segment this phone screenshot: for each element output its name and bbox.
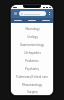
button[interactable] [19, 11, 46, 16]
button[interactable] [39, 18, 53, 23]
button[interactable]: Neurology [11, 25, 53, 33]
staticText: Neurology [25, 27, 40, 31]
button[interactable]: Surgery [11, 89, 53, 95]
staticText: Surgery [27, 90, 38, 94]
staticText: Psychiatry [25, 67, 39, 71]
staticText: Orthopedics [24, 51, 41, 55]
button[interactable]: Gastroenterology [11, 41, 53, 49]
button[interactable]: Menu [13, 11, 18, 16]
button[interactable]: Rheumatology [11, 81, 53, 89]
button[interactable] [25, 18, 39, 23]
button[interactable]: Pediatrics [11, 57, 53, 65]
staticText: Gastroenterology [20, 43, 44, 47]
button[interactable] [11, 18, 25, 23]
staticText: Pediatrics [25, 59, 39, 63]
button[interactable]: Orthopedics [11, 49, 53, 57]
button[interactable]: Psychiatry [11, 65, 53, 73]
staticText: Urology [27, 35, 38, 39]
button[interactable]: Urology [11, 33, 53, 41]
button[interactable]: More options [47, 12, 51, 16]
staticText: Pulmonary/Critical care [16, 75, 48, 79]
button[interactable]: Pulmonary/Critical care [11, 73, 53, 81]
staticText: Rheumatology [22, 83, 42, 87]
